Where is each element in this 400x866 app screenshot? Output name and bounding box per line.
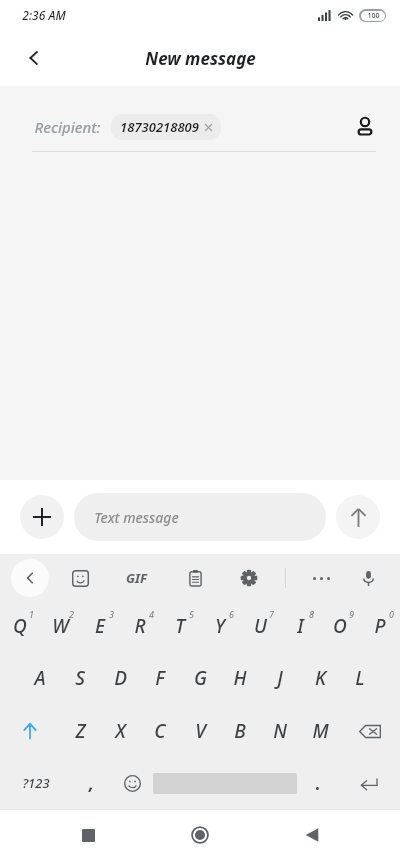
button[interactable]: I (280, 601, 320, 651)
button[interactable]: Voice input (349, 559, 387, 597)
button[interactable]: M (300, 706, 340, 756)
button[interactable]: . (297, 758, 338, 808)
staticText: 7 (269, 608, 274, 620)
button[interactable]: N (260, 706, 300, 756)
button[interactable]: C (140, 706, 180, 756)
button[interactable]: Choose contact (344, 107, 386, 147)
button[interactable]: Shift (0, 706, 60, 756)
staticText: P (374, 613, 386, 639)
staticText: , (89, 772, 94, 795)
staticText: 8 (309, 608, 314, 620)
staticText: Text message (94, 508, 179, 527)
button[interactable]: A (20, 653, 60, 703)
button[interactable]: B (220, 706, 260, 756)
staticText: G (194, 665, 207, 691)
button[interactable]: U (240, 601, 280, 651)
button[interactable]: 18730218809 (111, 114, 221, 140)
staticText: K (315, 665, 326, 691)
button[interactable]: Back (12, 36, 56, 80)
button[interactable]: Backspace (340, 706, 400, 756)
button[interactable]: D (100, 653, 140, 703)
staticText: W (52, 613, 69, 639)
button[interactable]: S (60, 653, 100, 703)
staticText: I (297, 613, 304, 639)
button[interactable]: L (340, 653, 380, 703)
staticText: N (273, 718, 287, 744)
button[interactable]: Enter (338, 758, 400, 808)
button[interactable]: V (180, 706, 220, 756)
button[interactable]: Settings (230, 559, 268, 597)
button[interactable]: Q (0, 601, 40, 651)
staticText: C (154, 718, 166, 744)
button[interactable]: Send (336, 495, 380, 539)
button[interactable]: R (120, 601, 160, 651)
staticText: T (175, 613, 185, 639)
staticText: . (315, 772, 320, 795)
staticText: 5 (189, 608, 194, 620)
button[interactable]: Clipboard (176, 559, 214, 597)
button[interactable]: J (260, 653, 300, 703)
staticText: New message (145, 47, 256, 70)
button[interactable]: , (71, 758, 112, 808)
button[interactable]: G (180, 653, 220, 703)
staticText: 4 (149, 608, 154, 620)
staticText: 0 (389, 608, 394, 620)
button[interactable]: Add attachment (20, 495, 64, 539)
staticText: M (312, 718, 329, 744)
staticText: J (277, 665, 283, 691)
button[interactable]: Back (288, 811, 336, 859)
staticText: Y (215, 613, 225, 639)
staticText: O (333, 613, 347, 639)
staticText: 100 (367, 11, 380, 21)
button[interactable]: Collapse toolbar (11, 559, 49, 597)
staticText: ?123 (22, 774, 50, 792)
staticText: Q (13, 613, 27, 639)
button[interactable]: Z (60, 706, 100, 756)
staticText: 18730218809 (120, 118, 199, 136)
staticText: A (34, 665, 46, 691)
staticText: E (95, 613, 105, 639)
staticText: H (233, 665, 247, 691)
staticText: 1 (29, 608, 34, 620)
staticText: 6 (229, 608, 234, 620)
button[interactable]: O (320, 601, 360, 651)
button[interactable]: P (360, 601, 400, 651)
staticText: 3 (109, 608, 114, 620)
staticText: U (254, 613, 267, 639)
staticText: S (75, 665, 85, 691)
button[interactable]: W (40, 601, 80, 651)
button[interactable]: Text message (74, 493, 326, 541)
staticText: Recipient: (34, 117, 101, 137)
button[interactable] (153, 758, 297, 808)
button[interactable]: E (80, 601, 120, 651)
staticText: 2 (69, 608, 74, 620)
button[interactable]: Recent apps (64, 811, 112, 859)
button[interactable]: More options (302, 559, 340, 597)
button[interactable]: ?123 (0, 758, 71, 808)
button[interactable]: Stickers (61, 559, 99, 597)
staticText: L (355, 665, 365, 691)
button[interactable]: Y (200, 601, 240, 651)
staticText: V (195, 718, 206, 744)
staticText: 9 (349, 608, 354, 620)
button[interactable]: X (100, 706, 140, 756)
button[interactable]: K (300, 653, 340, 703)
staticText: X (115, 718, 126, 744)
button[interactable]: F (140, 653, 180, 703)
staticText: B (234, 718, 246, 744)
button[interactable]: Home (176, 811, 224, 859)
staticText: F (155, 665, 165, 691)
staticText: 2:36 AM (22, 7, 66, 23)
staticText: GIF (126, 569, 147, 587)
button[interactable]: T (160, 601, 200, 651)
staticText: R (134, 613, 146, 639)
staticText: D (114, 665, 127, 691)
button[interactable]: Emoji (112, 758, 153, 808)
button[interactable]: GIF (113, 555, 159, 601)
button[interactable]: H (220, 653, 260, 703)
staticText: Z (75, 718, 86, 744)
